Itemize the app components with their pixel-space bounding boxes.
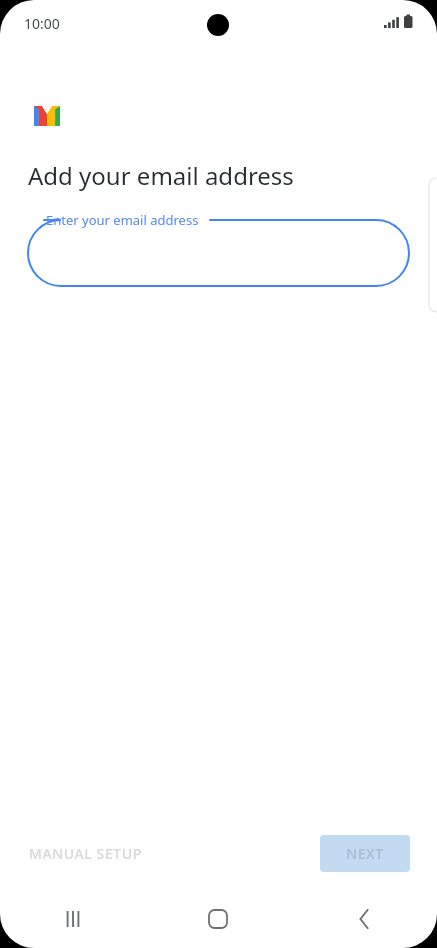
button[interactable]: Enter your email address [28,210,409,288]
button[interactable]: Back [291,890,437,948]
staticText: Enter your email address [46,211,199,229]
button[interactable]: NEXT [320,835,410,872]
button[interactable]: MANUAL SETUP [20,836,151,871]
staticText: MANUAL SETUP [29,844,142,863]
staticText: Add your email address [28,159,294,192]
button[interactable]: Home [145,890,291,948]
staticText: NEXT [346,844,384,863]
button[interactable]: Recent apps [0,890,145,948]
staticText: 10:00 [24,14,60,33]
